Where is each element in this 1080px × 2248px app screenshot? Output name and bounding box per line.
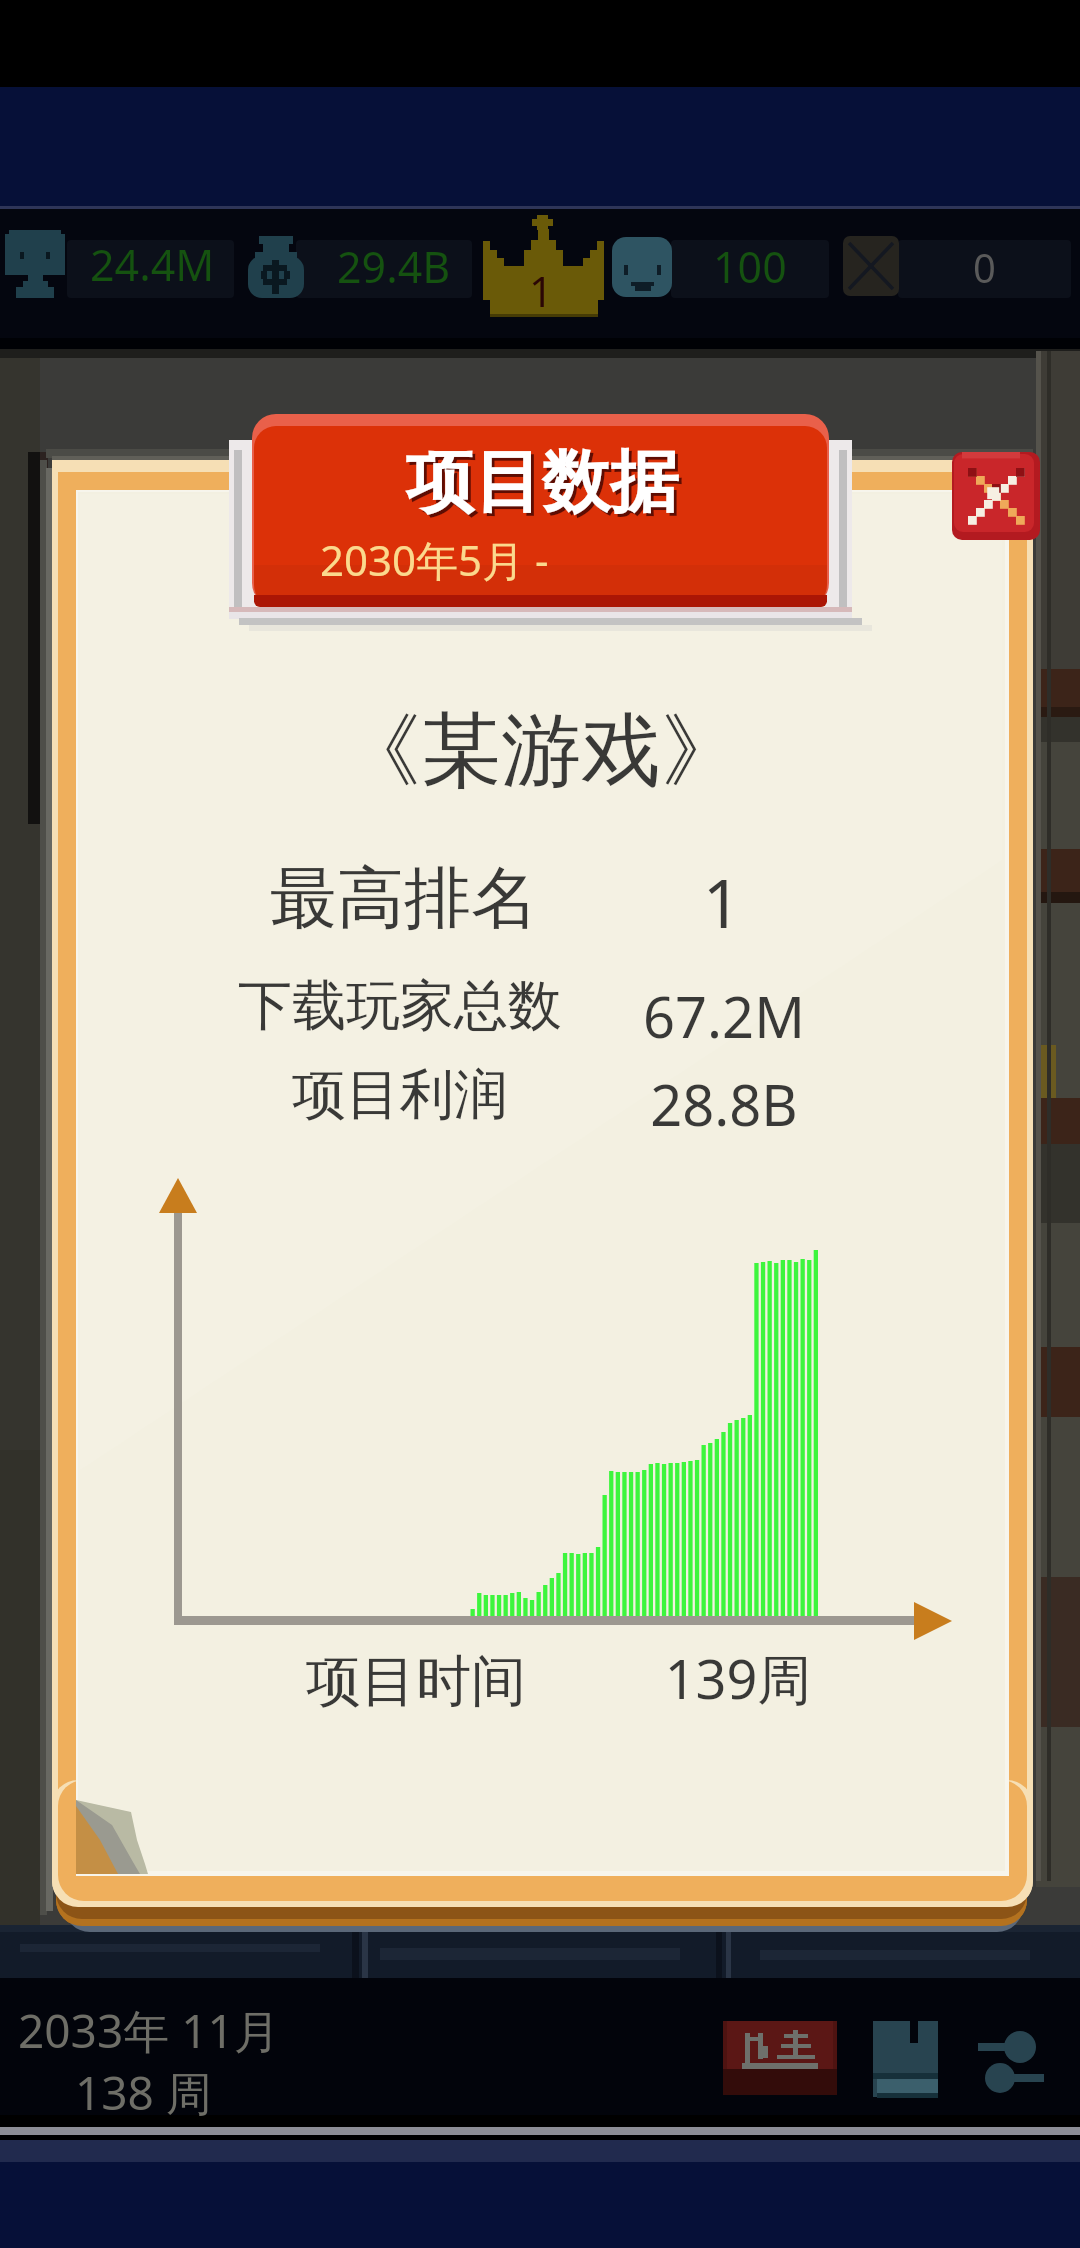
- staticText: 67.2M: [574, 978, 874, 1054]
- staticText: 28.8B: [574, 1066, 874, 1142]
- staticText: 100: [713, 237, 787, 296]
- staticText: 1: [529, 262, 554, 319]
- button[interactable]: 关闭: [953, 450, 1041, 538]
- staticText: 项目时间: [116, 1647, 716, 1716]
- staticText: 项目数据: [252, 440, 832, 526]
- staticText: 0: [973, 240, 996, 294]
- staticText: 139周: [588, 1641, 888, 1715]
- staticText: 下载玩家总数: [100, 972, 700, 1040]
- staticText: 项目数据: [255, 443, 835, 529]
- staticText: 项目利润: [100, 1061, 700, 1129]
- staticText: 138 周: [75, 2061, 212, 2124]
- staticText: 24.4M: [90, 235, 215, 294]
- button[interactable]: 设置: [976, 2006, 1060, 2084]
- staticText: 《某游戏》: [141, 701, 941, 802]
- staticText: 最高排名: [104, 856, 704, 940]
- staticText: 2033年 11月: [18, 1999, 280, 2062]
- staticText: 1: [572, 856, 872, 947]
- button[interactable]: 代金券: [722, 2000, 838, 2092]
- staticText: 29.4B: [337, 237, 451, 296]
- button[interactable]: 记录: [872, 1996, 938, 2086]
- staticText: 2030年5月 -: [320, 531, 549, 588]
